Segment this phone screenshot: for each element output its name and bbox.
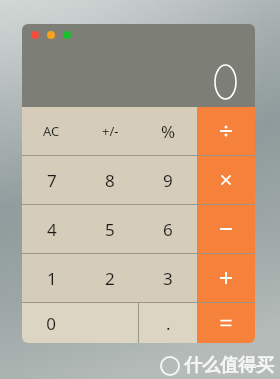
button[interactable]: 3 — [139, 254, 197, 302]
button[interactable]: Equals — [197, 303, 255, 343]
staticText: 什么值得买 — [184, 354, 274, 377]
staticText: 1 — [47, 267, 57, 290]
button[interactable]: 5 — [81, 205, 139, 253]
button[interactable]: 1 — [22, 254, 81, 302]
button[interactable]: 9 — [139, 156, 197, 204]
button[interactable]: AC — [22, 107, 81, 155]
staticText: 3 — [163, 267, 173, 290]
button[interactable]: Zoom — [63, 31, 71, 39]
button[interactable]: 4 — [22, 205, 81, 253]
staticText: +/- — [102, 122, 119, 140]
button[interactable]: Plus — [197, 254, 255, 302]
staticText: 4 — [47, 218, 57, 241]
button[interactable]: 6 — [139, 205, 197, 253]
button[interactable]: 7 — [22, 156, 81, 204]
button[interactable]: +/- — [81, 107, 139, 155]
button[interactable]: 8 — [81, 156, 139, 204]
staticText: 8 — [105, 169, 115, 192]
staticText: 0 — [22, 312, 80, 335]
button[interactable]: . — [139, 303, 197, 343]
button[interactable]: Close — [31, 31, 39, 39]
staticText: . — [166, 312, 171, 335]
staticText: 9 — [163, 169, 173, 192]
staticText: % — [161, 120, 176, 143]
staticText: 5 — [105, 218, 115, 241]
button[interactable]: Minus — [197, 205, 255, 253]
staticText: 7 — [47, 169, 57, 192]
button[interactable]: % — [139, 107, 197, 155]
button[interactable]: Multiply — [197, 156, 255, 204]
button[interactable]: Divide — [197, 107, 255, 155]
button[interactable]: Minimize — [47, 31, 55, 39]
button[interactable]: 0 — [22, 303, 138, 343]
staticText: 6 — [163, 218, 173, 241]
staticText: 2 — [105, 267, 115, 290]
button[interactable]: 2 — [81, 254, 139, 302]
staticText: AC — [43, 122, 60, 140]
